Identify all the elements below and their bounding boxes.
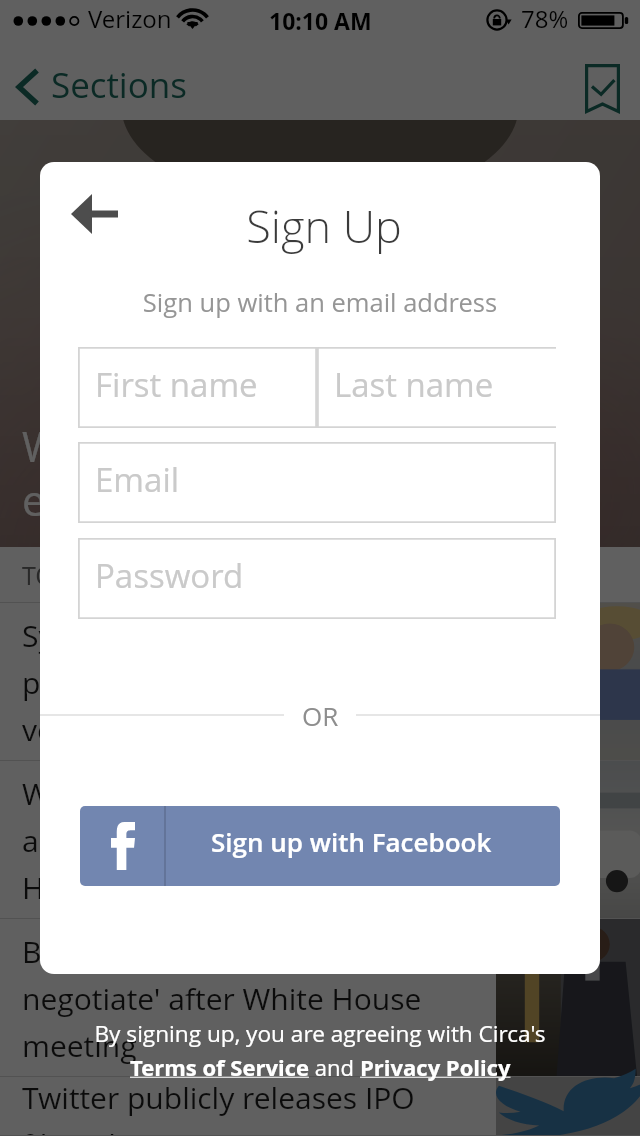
staticText: Sign Up xyxy=(44,195,600,256)
staticText: Wall Street slips on debt ceiling and sh… xyxy=(22,773,455,908)
button[interactable]: Wall Street slips on debt ceiling and sh… xyxy=(0,761,640,919)
button[interactable]: First name xyxy=(78,347,317,428)
staticText: OR xyxy=(302,698,339,733)
staticText: Sections xyxy=(51,61,188,109)
button[interactable]: Email xyxy=(78,442,556,523)
button[interactable]: Saved articles xyxy=(585,64,620,113)
staticText: Password xyxy=(95,553,244,598)
staticText: Email xyxy=(95,457,180,502)
button[interactable]: Syria's chemical weapons production halt… xyxy=(0,603,640,761)
staticText: Last name xyxy=(334,362,494,407)
button[interactable]: Back xyxy=(64,186,128,242)
button[interactable]: Sections xyxy=(14,63,188,111)
staticText: TOP STORIES xyxy=(22,558,173,592)
staticText: By signing up, you are agreeing with Cir… xyxy=(94,1018,546,1049)
button[interactable]: Boehner: 'We will not negotiate' after W… xyxy=(0,919,640,1077)
button[interactable]: Privacy Policy xyxy=(360,1052,511,1082)
staticText: First name xyxy=(95,362,258,407)
button[interactable]: Terms of Service xyxy=(130,1052,309,1082)
staticText: Twitter publicly releases IPO filing doc… xyxy=(22,1077,415,1136)
button[interactable]: Last name xyxy=(317,347,556,428)
staticText: Boehner: 'We will not negotiate' after W… xyxy=(22,931,422,1066)
staticText: 10:10 AM xyxy=(269,5,372,36)
button[interactable]: Password xyxy=(78,538,556,619)
button[interactable]: Twitter publicly releases IPO filing doc… xyxy=(0,1077,640,1136)
staticText: Syria's chemical weapons production halt… xyxy=(22,615,433,750)
staticText: Verizon xyxy=(88,2,172,35)
staticText: White House and Iran hold extraordinary … xyxy=(22,417,545,529)
staticText: 78% xyxy=(521,2,569,35)
staticText: Sign up with an email address xyxy=(40,285,600,320)
staticText: and xyxy=(309,1052,360,1082)
button[interactable]: Sign up with Facebook xyxy=(80,806,560,886)
staticText: Sign up with Facebook xyxy=(211,824,492,859)
